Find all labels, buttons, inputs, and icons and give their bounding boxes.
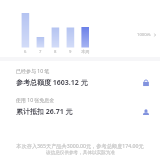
staticText: 该信息仅供参考，具体以实际为准 <box>46 150 115 156</box>
staticText: 1000元 <box>137 32 151 38</box>
staticText: 使用 10 张免息金 <box>16 97 55 104</box>
staticText: 参考总额度 1603.12 元 <box>16 78 88 88</box>
button[interactable]: 额度说明 <box>142 79 150 87</box>
staticText: 8 <box>54 49 57 55</box>
button[interactable]: 1000元 <box>137 32 160 38</box>
button[interactable]: 已经参与 10 笔 <box>0 65 160 93</box>
staticText: 9 <box>69 49 72 55</box>
staticText: 7 <box>39 49 42 55</box>
button[interactable]: 使用 10 张免息金 <box>0 94 160 122</box>
staticText: 累计抵扣 26.71 元 <box>16 107 73 117</box>
staticText: 6 <box>24 49 27 55</box>
staticText: 本周 <box>81 49 90 54</box>
button[interactable]: 抵扣说明 <box>142 109 150 117</box>
staticText: 本次存入365天产品共3000.00元，参考总额度174.00元 <box>16 142 144 149</box>
staticText: 已经参与 10 笔 <box>16 68 50 75</box>
